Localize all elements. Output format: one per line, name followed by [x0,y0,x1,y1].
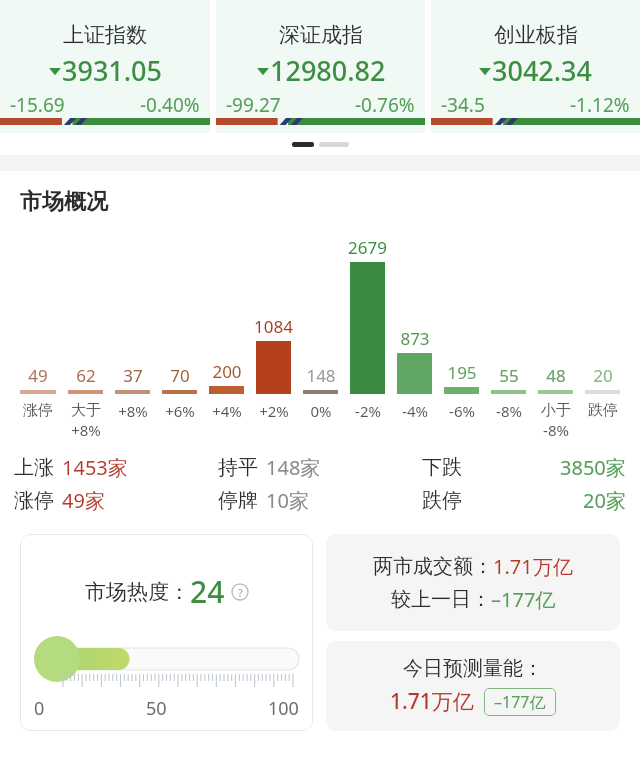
staticText: 创业板指 [494,22,578,48]
staticText: 20家 [583,487,626,514]
staticText: 1.71万亿 [493,553,573,580]
staticText: 深证成指 [279,22,363,48]
staticText: 下跌 [422,455,462,480]
staticText: 0% [310,401,332,421]
staticText: -8% [496,401,522,421]
staticText: 3931.05 [62,52,163,89]
staticText: 1.71万亿 [390,687,474,716]
staticText: 10家 [266,487,309,514]
staticText: 上涨 [14,455,54,480]
staticText: 今日预测量能： [403,656,543,681]
staticText: 20 [593,364,613,387]
staticText: 12980.82 [270,52,386,89]
staticText: 70 [170,364,190,387]
staticText: 49 [28,364,48,387]
staticText: 涨停 [23,401,53,420]
staticText: 较上一日： [391,587,491,612]
staticText: -0.40% [140,92,200,118]
staticText: +2% [259,401,289,421]
staticText: 195 [447,361,477,384]
button[interactable]: 深证成指 [216,0,425,133]
staticText: 37 [123,364,143,387]
staticText: 200 [212,360,242,383]
staticText: 大于 [71,401,101,420]
staticText: 1084 [254,315,293,338]
button[interactable]: 上证指数 [0,0,210,133]
staticText: +8% [118,401,148,421]
staticText: 停牌 [218,488,258,513]
staticText: 持平 [218,455,258,480]
staticText: +4% [212,401,242,421]
staticText: –177亿 [494,691,546,713]
staticText: 市场概况 [20,188,108,216]
staticText: 涨停 [14,488,54,513]
staticText: 3042.34 [492,52,593,89]
staticText: 100 [268,696,299,721]
staticText: –177亿 [491,586,556,613]
button[interactable]: 帮助 [231,583,249,601]
staticText: 2679 [348,236,387,259]
staticText: 市场热度： [85,579,190,605]
staticText: 1453家 [62,454,128,481]
staticText: 3850家 [560,454,626,481]
staticText: 24 [190,571,225,612]
staticText: 0 [34,696,45,721]
staticText: 48 [546,364,566,387]
button[interactable]: 两市成交额： [326,534,620,631]
staticText: 148家 [266,454,321,481]
staticText: -1.12% [570,92,630,118]
staticText: -15.69 [10,92,65,118]
staticText: 50 [146,696,167,721]
staticText: 49家 [62,487,105,514]
button[interactable]: 今日预测量能： [326,641,620,731]
staticText: -4% [402,401,428,421]
staticText: 148 [306,364,336,387]
staticText: -2% [355,401,381,421]
staticText: -34.5 [441,92,485,118]
staticText: 跌停 [422,488,462,513]
staticText: 上证指数 [63,22,147,48]
staticText: 62 [76,364,96,387]
staticText: 55 [499,364,519,387]
staticText: 873 [400,327,430,350]
button[interactable]: 创业板指 [431,0,640,133]
staticText: 小于 [541,401,571,420]
staticText: +6% [165,401,195,421]
staticText: -6% [449,401,475,421]
staticText: 两市成交额： [373,554,493,579]
button[interactable]: 市场热度： [20,534,313,731]
staticText: -99.27 [226,92,281,118]
staticText: -0.76% [355,92,415,118]
staticText: +8% [71,420,101,440]
staticText: ? [238,585,243,600]
staticText: -8% [543,420,569,440]
staticText: 跌停 [588,401,618,420]
